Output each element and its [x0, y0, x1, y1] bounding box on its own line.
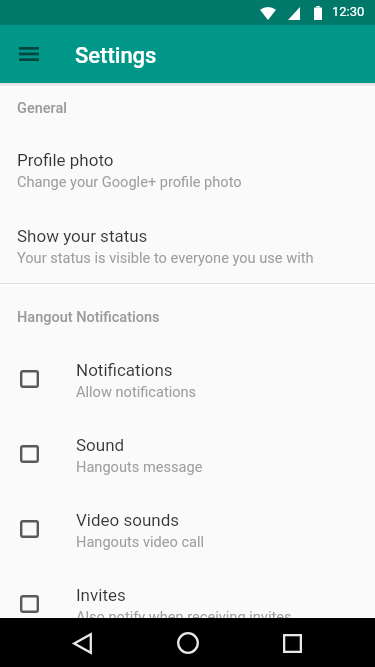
staticText: Video sounds: [76, 510, 180, 530]
staticText: Hangouts message: [76, 458, 203, 475]
staticText: Allow notifications: [76, 383, 197, 400]
staticText: Sound: [76, 435, 125, 455]
staticText: Also notify when receiving invites: [76, 608, 292, 618]
staticText: Your status is visible to everyone you u…: [17, 249, 314, 266]
staticText: Hangout Notifications: [17, 309, 160, 326]
staticText: Notifications: [76, 360, 173, 380]
button[interactable]: Back: [58, 619, 106, 667]
staticText: General: [17, 100, 67, 117]
staticText: Settings: [75, 43, 157, 69]
button[interactable]: Open navigation drawer: [7, 30, 51, 78]
button[interactable]: Profile photo: [0, 132, 375, 207]
staticText: 12:30: [332, 4, 365, 19]
button[interactable]: Notifications: [0, 342, 375, 417]
staticText: Hangouts video call: [76, 533, 205, 550]
button[interactable]: Invites: [0, 567, 375, 618]
button[interactable]: Home: [164, 619, 212, 667]
staticText: Show your status: [17, 226, 148, 246]
button[interactable]: Sound: [0, 417, 375, 492]
button[interactable]: Recent apps: [268, 619, 316, 667]
button[interactable]: Video sounds: [0, 492, 375, 567]
button[interactable]: Show your status: [0, 208, 375, 283]
staticText: Profile photo: [17, 150, 114, 170]
staticText: Change your Google+ profile photo: [17, 173, 242, 190]
staticText: Invites: [76, 585, 126, 605]
